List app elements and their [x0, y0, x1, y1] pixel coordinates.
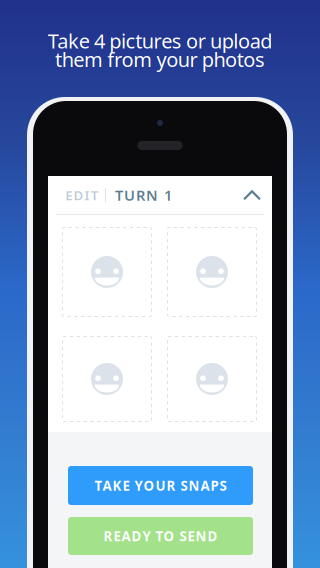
button[interactable]: TAKE YOUR SNAPS	[68, 466, 253, 505]
staticText: EDIT	[65, 186, 99, 204]
staticText: TAKE YOUR SNAPS	[94, 477, 226, 494]
button[interactable]: Add photo	[62, 227, 152, 317]
staticText: them from your photos	[55, 46, 265, 73]
button[interactable]: Add photo	[167, 336, 257, 422]
button[interactable]: Add photo	[167, 227, 257, 317]
button[interactable]: Add photo	[62, 336, 152, 422]
button[interactable]: READY TO SEND	[68, 517, 253, 555]
staticText: Take 4 pictures or upload	[48, 27, 272, 54]
staticText: READY TO SEND	[103, 527, 217, 545]
button[interactable]: Collapse turn	[234, 176, 270, 214]
button[interactable]: EDIT	[61, 176, 103, 214]
staticText: TURN 1	[115, 185, 172, 205]
